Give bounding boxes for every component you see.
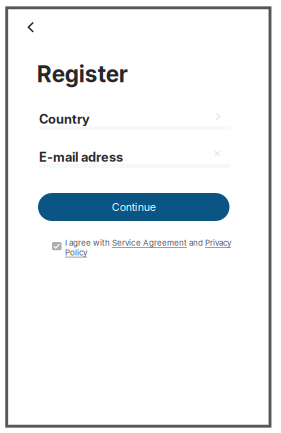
button[interactable]: Agree to terms <box>52 242 62 250</box>
button[interactable]: Country <box>39 112 230 130</box>
staticText: Register <box>37 60 128 88</box>
button[interactable]: Continue <box>38 193 229 221</box>
staticText: Continue <box>112 200 156 213</box>
staticText: I agree with Service Agreement and Priva… <box>65 238 231 257</box>
staticText: E-mail adress <box>39 149 123 165</box>
button[interactable]: E-mail adress <box>39 150 230 168</box>
button[interactable]: Back <box>20 16 42 38</box>
staticText: Country <box>39 111 90 127</box>
